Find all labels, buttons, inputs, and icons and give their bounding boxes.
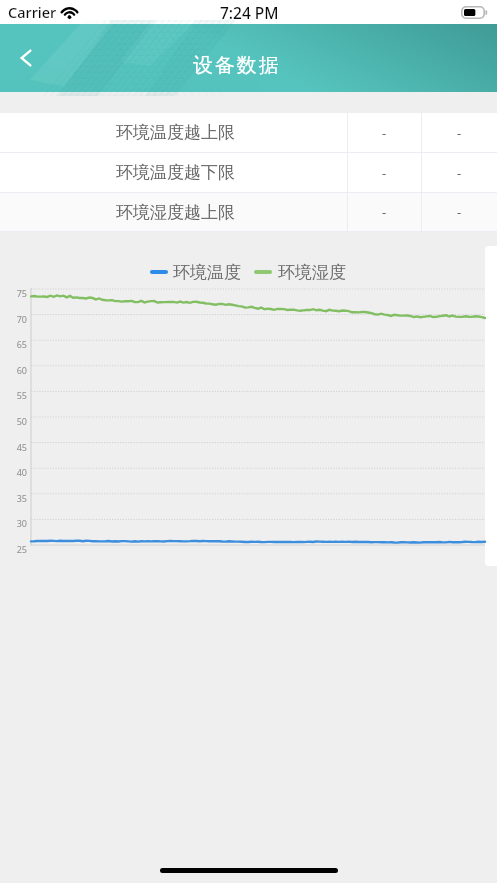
staticText: 65: [16, 338, 27, 350]
staticText: 70: [16, 313, 27, 325]
staticText: 环境湿度越上限: [116, 202, 235, 223]
staticText: -: [382, 203, 387, 221]
staticText: 45: [16, 441, 27, 453]
staticText: 环境湿度: [278, 262, 346, 283]
staticText: 7:24 PM: [220, 2, 279, 23]
staticText: -: [382, 164, 387, 182]
staticText: Carrier: [8, 2, 57, 22]
button[interactable]: 环境湿度越上限: [0, 193, 497, 231]
staticText: 40: [16, 466, 27, 478]
staticText: 设备数据: [193, 53, 281, 78]
staticText: 环境温度越上限: [116, 122, 235, 143]
staticText: 35: [16, 492, 27, 504]
staticText: 环境温度: [173, 262, 241, 283]
button[interactable]: Back: [0, 24, 52, 92]
button[interactable]: 环境温度越下限: [0, 153, 497, 192]
staticText: 25: [16, 543, 27, 555]
staticText: -: [457, 124, 462, 142]
staticText: -: [457, 203, 462, 221]
staticText: 75: [16, 287, 27, 299]
staticText: 环境温度越下限: [116, 162, 235, 183]
staticText: -: [382, 124, 387, 142]
staticText: -: [457, 164, 462, 182]
staticText: 30: [16, 517, 27, 529]
staticText: 55: [16, 389, 27, 401]
staticText: 60: [16, 364, 27, 376]
staticText: 50: [16, 415, 27, 427]
button[interactable]: 环境温度越上限: [0, 113, 497, 152]
